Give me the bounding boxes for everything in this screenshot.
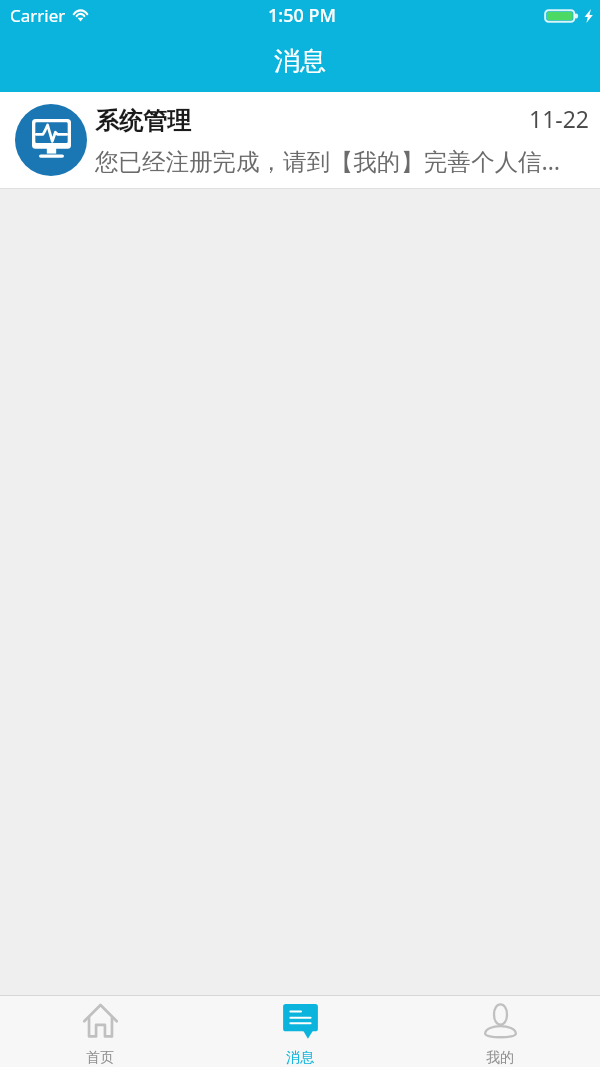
- staticText: 系统管理: [95, 106, 191, 136]
- staticText: 消息: [274, 45, 326, 78]
- staticText: 我的: [486, 1049, 514, 1067]
- staticText: 消息: [286, 1049, 314, 1067]
- button[interactable]: Messages: [200, 996, 400, 1067]
- staticText: 首页: [86, 1049, 114, 1067]
- staticText: 您已经注册完成，请到【我的】完善个人信…: [95, 145, 561, 177]
- staticText: 11-22: [529, 103, 590, 134]
- staticText: 1:50 PM: [268, 3, 336, 28]
- button[interactable]: Home: [0, 996, 200, 1067]
- button[interactable]: Profile: [400, 996, 600, 1067]
- button[interactable]: 系统管理: [0, 92, 600, 189]
- staticText: Carrier: [10, 4, 66, 27]
